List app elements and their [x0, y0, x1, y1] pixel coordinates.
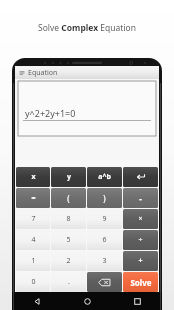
staticText: 3: [102, 256, 107, 266]
button[interactable]: x: [16, 167, 50, 187]
staticText: 9: [102, 214, 107, 224]
staticText: 6: [102, 235, 107, 245]
staticText: y: [67, 172, 71, 182]
button[interactable]: 7: [16, 209, 50, 229]
button[interactable]: Solve: [123, 272, 158, 292]
button[interactable]: 4: [16, 230, 50, 250]
button[interactable]: a^b: [87, 167, 122, 187]
staticText: .: [68, 277, 70, 287]
button[interactable]: Recent apps: [130, 294, 144, 308]
staticText: 0: [31, 277, 36, 287]
button[interactable]: -: [123, 188, 158, 208]
staticText: ): [103, 193, 106, 204]
staticText: 4: [31, 235, 36, 245]
button[interactable]: Back: [30, 294, 44, 308]
button[interactable]: Enter: [123, 167, 158, 187]
button[interactable]: .: [51, 272, 86, 292]
button[interactable]: ): [87, 188, 122, 208]
staticText: +: [138, 256, 143, 266]
button[interactable]: Equation: [15, 66, 159, 79]
button[interactable]: +: [123, 251, 158, 271]
button[interactable]: 9: [87, 209, 122, 229]
staticText: ×: [138, 214, 143, 224]
button[interactable]: Home: [80, 294, 94, 308]
staticText: (: [67, 193, 70, 204]
button[interactable]: =: [16, 188, 50, 208]
button[interactable]: 3: [87, 251, 122, 271]
button[interactable]: ×: [123, 209, 158, 229]
staticText: 1: [31, 256, 36, 266]
staticText: a^b: [98, 172, 111, 182]
button[interactable]: 5: [51, 230, 86, 250]
staticText: =: [31, 193, 36, 203]
staticText: Solve: [130, 277, 152, 288]
staticText: y^2+2y+1=0: [25, 107, 76, 119]
button[interactable]: ÷: [123, 230, 158, 250]
staticText: 5: [66, 235, 71, 245]
staticText: 8: [66, 214, 71, 224]
staticText: 2: [66, 256, 71, 266]
button[interactable]: y^2+2y+1=0: [18, 81, 156, 136]
staticText: Equation: [28, 68, 58, 78]
button[interactable]: 8: [51, 209, 86, 229]
button[interactable]: 0: [16, 272, 50, 292]
staticText: -: [139, 193, 142, 204]
button[interactable]: 6: [87, 230, 122, 250]
staticText: x: [31, 172, 36, 182]
staticText: 7: [31, 214, 36, 224]
button[interactable]: y: [51, 167, 86, 187]
button[interactable]: 1: [16, 251, 50, 271]
button[interactable]: 2: [51, 251, 86, 271]
staticText: ÷: [138, 235, 143, 245]
button[interactable]: Backspace: [87, 272, 122, 292]
staticText: Solve Complex Equation: [38, 22, 136, 34]
button[interactable]: (: [51, 188, 86, 208]
